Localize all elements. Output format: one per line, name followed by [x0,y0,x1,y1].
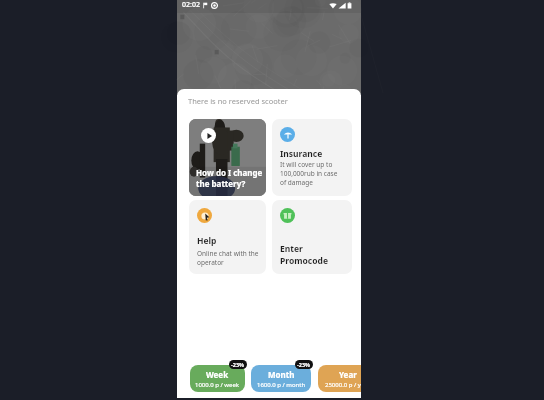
staticText: Help [197,235,217,247]
staticText: -23% [297,361,311,368]
button[interactable]: Year [318,365,361,392]
staticText: Year [339,369,357,380]
staticText: Insurance [280,148,323,160]
button[interactable]: Help [189,200,266,274]
staticText: 02:02 [182,0,200,10]
staticText: How do I change the battery? [196,167,263,189]
staticText: 1600.0 p / month [257,381,306,389]
staticText: 25000.0 p / year [325,381,361,389]
staticText: Enter Promocode [280,243,328,267]
button[interactable]: Enter Promocode [272,200,352,274]
button[interactable]: Month [251,365,311,392]
staticText: Online chat with the operator [197,249,259,267]
staticText: There is no reserved scooter [188,96,288,106]
staticText: Month [268,369,295,380]
staticText: -23% [231,361,245,368]
button[interactable]: Insurance [272,119,352,196]
button[interactable]: Week [190,365,245,392]
button[interactable]: Play video [189,119,266,196]
staticText: 1000.0 p / week [195,381,240,389]
staticText: It will cover up to 100,000rub in case o… [280,160,338,187]
staticText: Week [206,369,229,380]
other: Play video [201,128,216,143]
